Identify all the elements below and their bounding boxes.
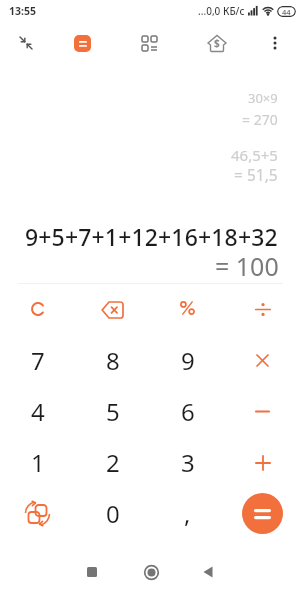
button[interactable]: $ [204,30,230,56]
button[interactable] [225,335,300,386]
button[interactable] [225,386,300,437]
staticText: $ [214,36,220,50]
staticText: 13:55 [9,4,36,18]
button[interactable] [225,437,300,488]
button[interactable]: 5 [75,386,150,437]
staticText: = 51,5 [234,164,278,185]
button[interactable] [225,284,300,335]
staticText: 5 [106,395,120,428]
button[interactable]: 8 [75,335,150,386]
staticText: 8 [106,344,120,377]
staticText: 6 [181,395,195,428]
button[interactable] [74,35,91,52]
staticText: ...0,0 КБ/с [198,4,245,18]
button[interactable] [262,30,288,56]
staticText: 3 [181,446,195,479]
staticText: = 100 [215,249,279,283]
button[interactable] [131,552,171,592]
staticText: 4 [31,395,45,428]
button[interactable] [0,488,75,539]
button[interactable]: 6 [150,386,225,437]
button[interactable] [242,493,283,534]
staticText: 2 [106,446,120,479]
staticText: 0 [106,497,120,530]
staticText: , [184,497,191,530]
staticText: 9+5+7+1+12+16+18+32 [25,221,278,252]
button[interactable]: 9 [150,335,225,386]
staticText: 46,5+5 [231,145,278,165]
staticText: 30×9 [248,89,278,107]
button[interactable]: , [150,488,225,539]
staticText: = 270 [242,110,278,129]
button[interactable]: 0 [75,488,150,539]
button[interactable] [75,284,150,335]
staticText: 9 [181,344,195,377]
button[interactable] [136,30,162,56]
button[interactable] [72,552,112,592]
staticText: 1 [31,446,45,479]
button[interactable]: 1 [0,437,75,488]
button[interactable] [0,284,75,335]
button[interactable] [13,30,39,56]
button[interactable] [188,552,228,592]
button[interactable]: 7 [0,335,75,386]
staticText: 44 [282,7,291,17]
button[interactable]: 3 [150,437,225,488]
button[interactable]: 2 [75,437,150,488]
button[interactable]: 4 [0,386,75,437]
button[interactable] [150,284,225,335]
staticText: 7 [31,344,45,377]
